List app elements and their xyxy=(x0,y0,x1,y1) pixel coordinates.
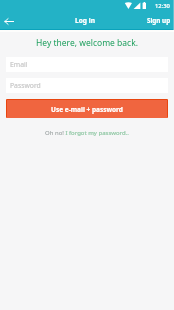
staticText: Hey there, welcome back. xyxy=(0,37,174,49)
button[interactable]: Back xyxy=(0,13,17,30)
button[interactable]: Use e-mail + password xyxy=(7,100,167,118)
staticText: Oh no! I forgot my password.. xyxy=(45,129,129,137)
staticText: Sign up xyxy=(147,16,171,25)
button[interactable]: Oh no! I forgot my password.. xyxy=(0,127,174,138)
button[interactable]: Email xyxy=(6,57,168,72)
staticText: Password xyxy=(10,81,41,90)
staticText: Email xyxy=(10,60,28,69)
staticText: 12:30 xyxy=(155,2,170,10)
staticText: Use e-mail + password xyxy=(51,105,123,114)
staticText: Log in xyxy=(75,16,95,25)
button[interactable]: Password xyxy=(6,78,168,93)
button[interactable]: Sign up xyxy=(143,13,174,26)
